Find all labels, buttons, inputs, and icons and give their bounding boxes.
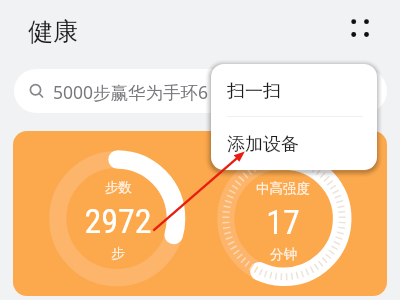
staticText: 中高强度 <box>256 180 310 197</box>
staticText: 17 <box>266 202 300 242</box>
staticText: 2972 <box>84 201 152 241</box>
staticText: 分钟 <box>270 246 297 263</box>
staticText: 5000步赢华为手环6 <box>53 80 209 104</box>
staticText: 步 <box>111 245 125 262</box>
staticText: 健康 <box>28 16 78 47</box>
staticText: 扫一扫 <box>227 80 281 103</box>
button[interactable]: 扫一扫 <box>211 64 377 116</box>
button[interactable]: 步数 <box>13 131 387 296</box>
button[interactable]: 添加设备 <box>211 117 377 170</box>
button[interactable]: 5000步赢华为手环6 <box>14 69 387 113</box>
staticText: 步数 <box>105 179 132 196</box>
staticText: 添加设备 <box>227 133 299 156</box>
button[interactable]: More options <box>342 10 378 46</box>
